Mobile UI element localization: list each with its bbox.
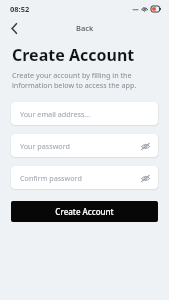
button[interactable]: Your password [11, 134, 158, 157]
staticText: Create your account by filling in the in… [12, 70, 155, 90]
staticText: Confirm password [20, 173, 82, 183]
staticText: 08:52 [10, 4, 30, 14]
button[interactable]: Confirm password [11, 166, 158, 189]
staticText: Your password [20, 141, 70, 151]
button[interactable]: Show password [138, 171, 152, 185]
staticText: Create Account [12, 44, 135, 66]
button[interactable]: Create Account [11, 201, 158, 222]
staticText: Your email address... [20, 109, 91, 119]
button[interactable]: Show password [138, 139, 152, 153]
button[interactable]: Your email address... [11, 102, 158, 125]
staticText: Back [76, 23, 94, 33]
staticText: Create Account [55, 206, 114, 217]
button[interactable]: Back [6, 20, 22, 36]
